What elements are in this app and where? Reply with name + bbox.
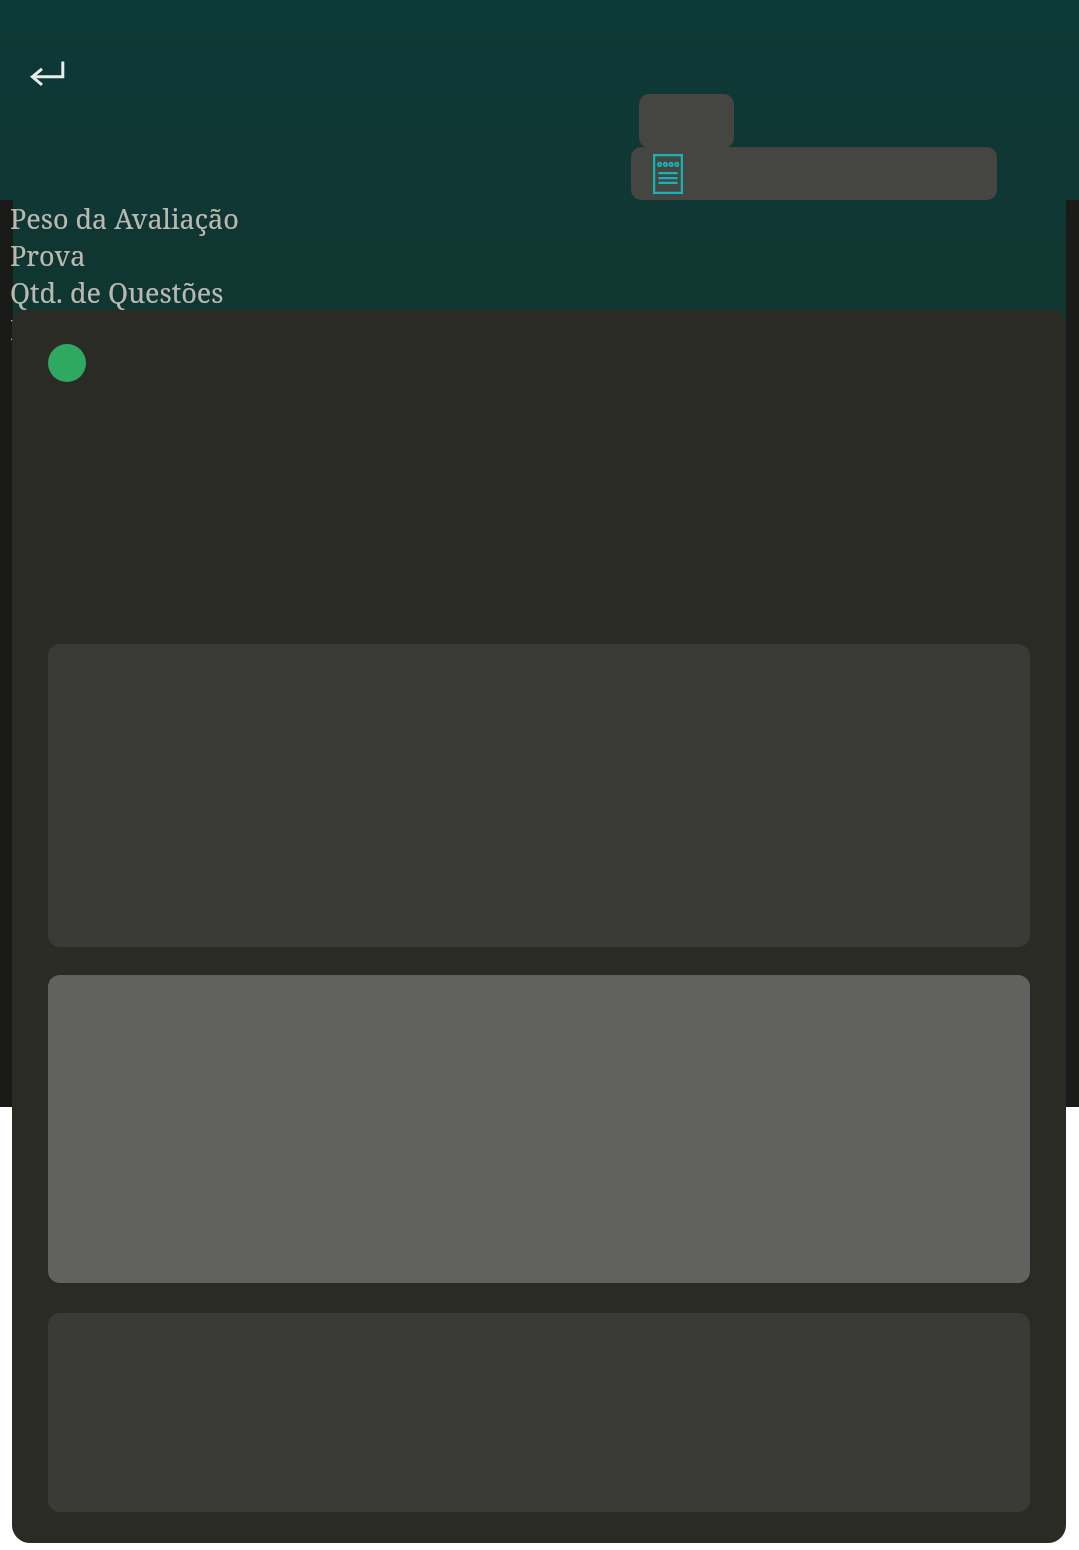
button[interactable] — [631, 147, 997, 200]
staticText: Nota — [10, 311, 71, 348]
button[interactable]: Status — [48, 344, 86, 382]
button[interactable]: Filtro — [639, 94, 734, 148]
staticText: Peso da Avaliação — [10, 200, 239, 237]
staticText: Qtd. de Questões — [10, 274, 224, 311]
button[interactable]: Voltar — [18, 40, 82, 104]
staticText: Prova — [10, 237, 86, 274]
